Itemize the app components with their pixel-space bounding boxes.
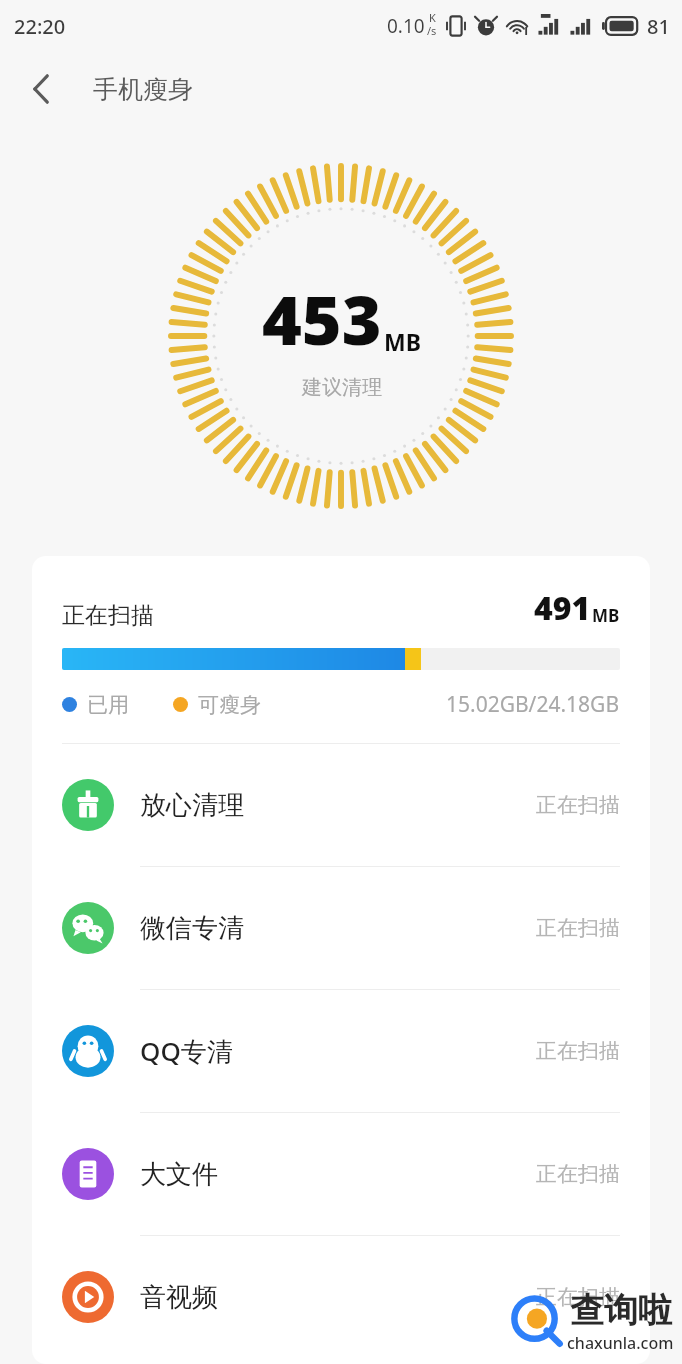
staticText: 音视频 <box>140 1281 218 1314</box>
staticText: /s <box>427 23 437 38</box>
staticText: 微信专清 <box>140 912 244 945</box>
button[interactable]: 音视频 <box>32 1236 650 1358</box>
staticText: K <box>429 10 436 25</box>
staticText: 22:20 <box>14 13 66 40</box>
staticText: 正在扫描 <box>536 1161 620 1187</box>
button[interactable]: QQ专清 <box>32 990 650 1113</box>
button[interactable]: 微信专清 <box>32 867 650 990</box>
button[interactable]: 大文件 <box>32 1113 650 1236</box>
button[interactable]: 放心清理 <box>32 744 650 867</box>
button[interactable]: Back <box>12 59 72 119</box>
staticText: 正在扫描 <box>536 915 620 941</box>
staticText: chaxunla.com <box>567 1332 674 1354</box>
staticText: MB <box>384 326 421 357</box>
staticText: QQ专清 <box>140 1033 233 1069</box>
staticText: 0.10 <box>387 13 425 39</box>
staticText: 已用 <box>87 692 129 718</box>
staticText: 手机瘦身 <box>93 74 193 105</box>
staticText: 15.02GB/24.18GB <box>446 690 620 719</box>
staticText: MB <box>592 604 620 627</box>
staticText: 放心清理 <box>140 789 244 822</box>
staticText: 正在扫描 <box>536 1284 620 1310</box>
staticText: 可瘦身 <box>198 692 261 718</box>
staticText: 81 <box>647 13 670 40</box>
staticText: 查询啦 <box>570 1289 672 1332</box>
staticText: 491 <box>534 586 591 630</box>
staticText: 453 <box>262 272 382 365</box>
staticText: 正在扫描 <box>536 1038 620 1064</box>
staticText: 正在扫描 <box>536 792 620 818</box>
staticText: 大文件 <box>140 1158 218 1191</box>
staticText: 正在扫描 <box>62 601 154 630</box>
staticText: 建议清理 <box>302 375 382 400</box>
